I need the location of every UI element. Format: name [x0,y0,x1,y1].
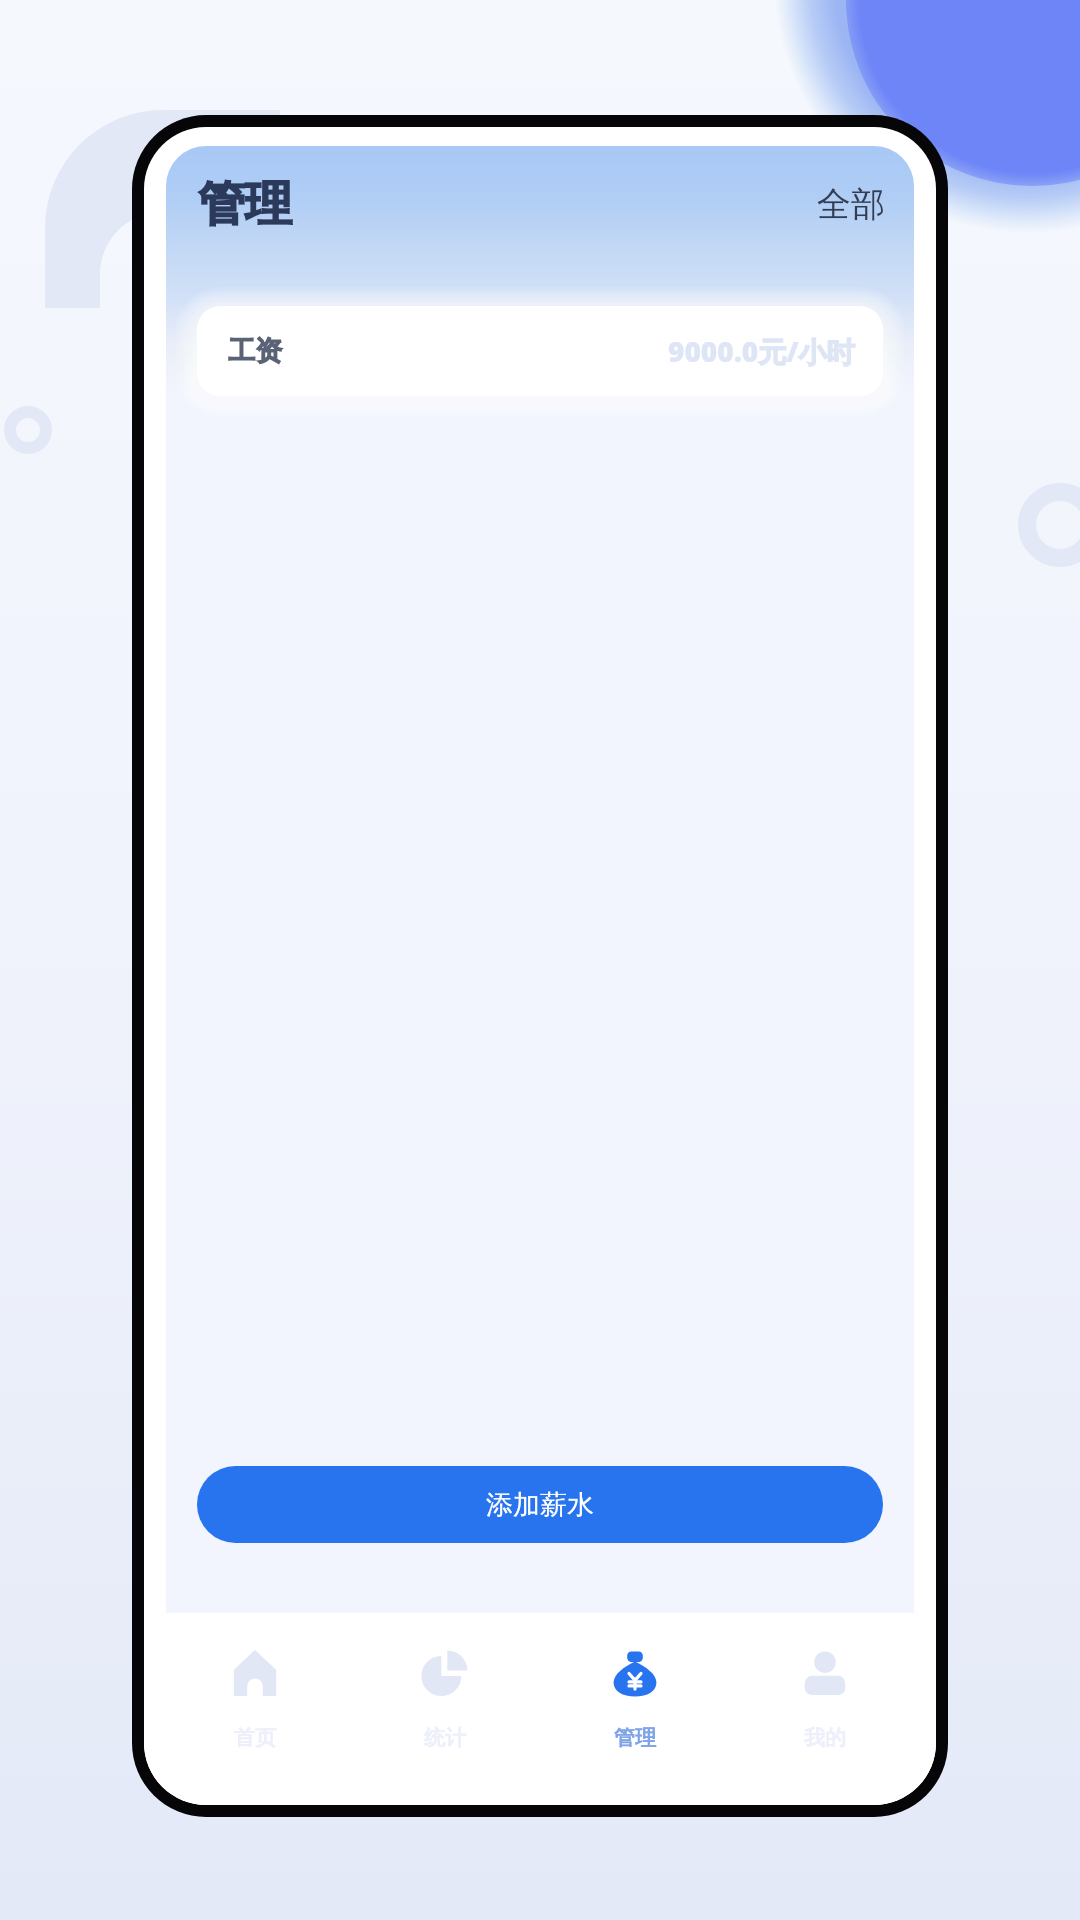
staticText: 9000.0元/小时 [668,332,855,370]
staticText: 我的 [804,1725,846,1751]
button[interactable]: 全部 [813,175,889,234]
button[interactable]: 首页 [160,1613,350,1805]
staticText: 工资 [228,334,282,368]
staticText: 添加薪水 [486,1488,594,1522]
button[interactable]: 我的 [730,1613,920,1805]
staticText: 首页 [234,1725,276,1751]
staticText: 管理 [614,1725,656,1751]
staticText: 全部 [817,183,885,226]
staticText: 管理 [198,175,292,234]
staticText: 统计 [424,1725,466,1751]
button[interactable]: 工资 [197,306,883,396]
button[interactable]: 管理 [540,1613,730,1805]
button[interactable]: 统计 [350,1613,540,1805]
button[interactable]: 添加薪水 [197,1466,883,1543]
